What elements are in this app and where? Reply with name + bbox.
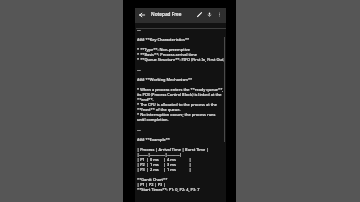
staticText: --- — [137, 127, 141, 132]
staticText: * No interruption occurs; the process ru… — [137, 112, 216, 117]
staticText: **Gantt Chart** — [137, 177, 168, 182]
staticText: * **Queue Structure**: FIFO (First In, F… — [137, 57, 225, 62]
staticText: its PCB (Process Control Block) is linke… — [137, 92, 222, 97]
button[interactable]: More options — [214, 9, 225, 20]
button[interactable]: Navigate up — [136, 9, 147, 20]
staticText: Notepad Free — [151, 11, 182, 17]
staticText: | P3 | 2 ms | 1 ms | — [137, 167, 192, 172]
staticText: * **Type**: Non-preemptive — [137, 47, 191, 52]
staticText: **Start Times**: P1: 0, P2: 4, P3: 7 — [137, 187, 200, 192]
staticText: | Process | Arrival Time | Burst Time | — [137, 147, 209, 152]
staticText: ### **Working Mechanism** — [137, 77, 193, 82]
staticText: * **Basis**: Process arrival time — [137, 52, 197, 57]
staticText: |-------|------------|----------| — [137, 152, 182, 157]
staticText: * When a process enters the **ready queu… — [137, 87, 224, 92]
button[interactable]: Edit note — [194, 9, 205, 20]
staticText: until completion. — [137, 117, 169, 122]
staticText: **front** of the queue. — [137, 107, 181, 112]
button[interactable]: Voice input — [204, 9, 215, 20]
staticText: **end**. — [137, 97, 154, 102]
staticText: * The CPU is allocated to the process at… — [137, 102, 217, 107]
staticText: ### **Example** — [137, 137, 170, 142]
staticText: | P1 | P2 | P3 | — [137, 182, 166, 187]
staticText: | P2 | 1 ms | 3 ms | — [137, 162, 192, 167]
staticText: --- — [137, 27, 141, 32]
staticText: | P1 | 0 ms | 4 ms | — [137, 157, 192, 162]
staticText: ### **Key Characteristics** — [137, 37, 190, 42]
staticText: --- — [137, 67, 141, 72]
